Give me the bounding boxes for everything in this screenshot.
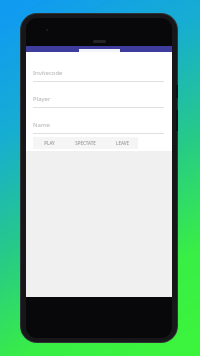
button[interactable]: LEAVE [106, 137, 138, 149]
button[interactable]: Name [33, 121, 164, 134]
staticText: SPECTATE [75, 140, 96, 146]
staticText: LEAVE [116, 140, 129, 146]
staticText: Name [33, 121, 50, 129]
staticText: PLAY [44, 140, 55, 146]
button[interactable]: PLAY [33, 137, 65, 149]
staticText: Invitecode [33, 69, 63, 77]
button[interactable]: Invitecode [33, 69, 164, 82]
button[interactable]: Player [33, 95, 164, 108]
button[interactable]: SPECTATE [65, 137, 106, 149]
staticText: Player [33, 95, 51, 103]
